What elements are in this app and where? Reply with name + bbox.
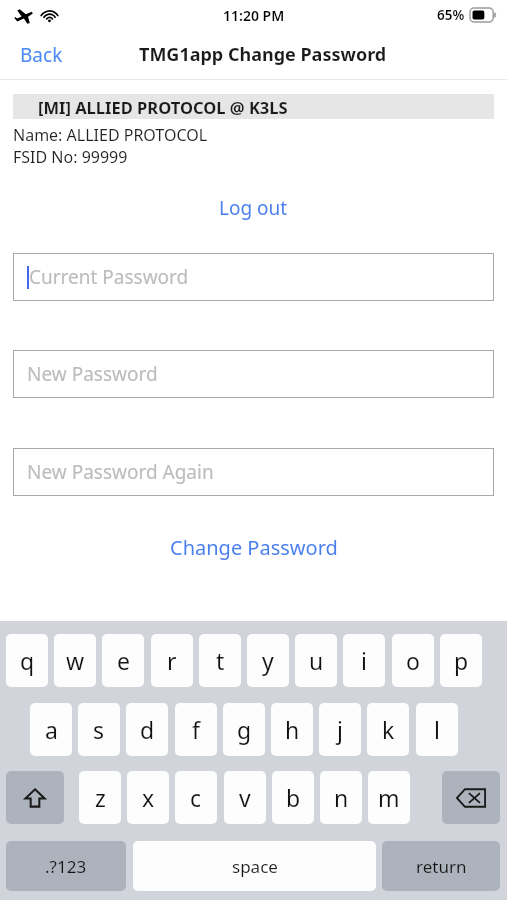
button[interactable]: e	[102, 634, 144, 687]
staticText: h	[285, 714, 300, 745]
button[interactable]: j	[319, 703, 361, 756]
button[interactable]: d	[126, 703, 168, 756]
staticText: y	[262, 645, 274, 676]
staticText: b	[286, 782, 301, 813]
staticText: e	[117, 645, 130, 676]
button[interactable]: y	[247, 634, 289, 687]
button[interactable]: b	[272, 771, 314, 824]
staticText: i	[361, 645, 367, 676]
button[interactable]: x	[127, 771, 169, 824]
staticText: q	[20, 645, 35, 676]
staticText: c	[190, 782, 202, 813]
staticText: a	[45, 714, 58, 745]
button[interactable]: New Password Again	[13, 448, 494, 496]
staticText: Name: ALLIED PROTOCOL	[13, 124, 208, 146]
button[interactable]: q	[6, 634, 48, 687]
staticText: Change Password	[170, 534, 338, 561]
staticText: u	[309, 645, 324, 676]
staticText: space	[232, 855, 278, 878]
button[interactable]: a	[30, 703, 72, 756]
staticText: n	[334, 782, 349, 813]
staticText: x	[142, 782, 155, 813]
button[interactable]: Backspace	[442, 771, 500, 824]
staticText: Log out	[219, 195, 288, 221]
staticText: f	[192, 714, 200, 745]
staticText: p	[454, 645, 469, 676]
staticText: t	[216, 645, 225, 676]
button[interactable]: v	[224, 771, 266, 824]
button[interactable]: c	[175, 771, 217, 824]
button[interactable]: n	[320, 771, 362, 824]
button[interactable]: p	[440, 634, 482, 687]
button[interactable]: z	[79, 771, 121, 824]
staticText: j	[337, 714, 343, 745]
button[interactable]: g	[223, 703, 265, 756]
button[interactable]: u	[295, 634, 337, 687]
staticText: FSID No: 99999	[13, 146, 128, 168]
button[interactable]: m	[368, 771, 410, 824]
staticText: return	[416, 855, 467, 878]
staticText: v	[239, 782, 251, 813]
button[interactable]: Current Password	[13, 253, 494, 301]
staticText: Back	[20, 42, 63, 68]
staticText: .?123	[45, 855, 87, 878]
staticText: l	[434, 714, 440, 745]
button[interactable]: Back	[0, 34, 83, 76]
staticText: g	[237, 714, 252, 745]
button[interactable]: .?123	[6, 841, 126, 891]
button[interactable]: New Password	[13, 350, 494, 398]
staticText: New Password Again	[27, 459, 214, 485]
button[interactable]: f	[175, 703, 217, 756]
button[interactable]: s	[78, 703, 120, 756]
button[interactable]: return	[382, 841, 500, 891]
staticText: Current Password	[29, 264, 189, 290]
button[interactable]: r	[151, 634, 193, 687]
staticText: m	[378, 782, 400, 813]
staticText: 65%	[437, 6, 465, 24]
button[interactable]: t	[199, 634, 241, 687]
staticText: o	[406, 645, 420, 676]
staticText: w	[66, 645, 85, 676]
button[interactable]: l	[416, 703, 458, 756]
staticText: s	[93, 714, 105, 745]
button[interactable]: Change Password	[154, 530, 354, 565]
staticText: r	[167, 645, 177, 676]
button[interactable]: k	[367, 703, 409, 756]
staticText: New Password	[27, 361, 158, 387]
button[interactable]: Log out	[203, 191, 304, 225]
button[interactable]: Shift	[6, 771, 64, 824]
staticText: d	[140, 714, 155, 745]
button[interactable]: space	[133, 841, 376, 891]
staticText: 11:20 PM	[223, 6, 285, 25]
button[interactable]: i	[343, 634, 385, 687]
staticText: [MI] ALLIED PROTOCOL @ K3LS	[38, 96, 288, 118]
button[interactable]: w	[54, 634, 96, 687]
staticText: TMG1app Change Password	[139, 42, 387, 67]
staticText: k	[382, 714, 395, 745]
button[interactable]: h	[271, 703, 313, 756]
button[interactable]: o	[392, 634, 434, 687]
staticText: z	[95, 782, 106, 813]
